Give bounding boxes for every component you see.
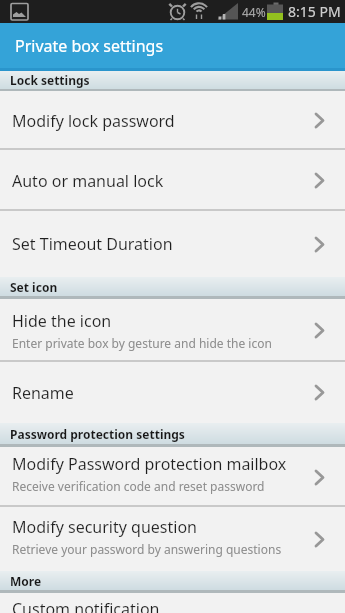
- button[interactable]: Modify Password protection mailbox: [0, 447, 345, 507]
- staticText: Modify lock password: [12, 110, 175, 132]
- staticText: Set icon: [10, 279, 58, 295]
- staticText: Password protection settings: [10, 426, 185, 442]
- button[interactable]: Modify security question: [0, 507, 345, 571]
- staticText: Receive verification code and reset pass…: [12, 478, 265, 494]
- staticText: Rename: [12, 382, 74, 404]
- staticText: Private box settings: [15, 35, 164, 57]
- staticText: Lock settings: [10, 72, 90, 88]
- button[interactable]: Auto or manual lock: [0, 150, 345, 211]
- staticText: Modify security question: [12, 516, 197, 538]
- staticText: Modify Password protection mailbox: [12, 453, 287, 475]
- staticText: Custom notification: [12, 598, 160, 613]
- button[interactable]: Custom notification: [0, 593, 345, 613]
- staticText: Enter private box by gesture and hide th…: [12, 335, 272, 351]
- staticText: Hide the icon: [12, 310, 112, 332]
- staticText: Set Timeout Duration: [12, 233, 173, 255]
- button[interactable]: Hide the icon: [0, 299, 345, 362]
- staticText: 44%: [242, 4, 266, 20]
- staticText: Retrieve your password by answering ques…: [12, 541, 282, 557]
- staticText: Auto or manual lock: [12, 170, 164, 192]
- staticText: More: [10, 573, 42, 589]
- button[interactable]: Set Timeout Duration: [0, 211, 345, 277]
- button[interactable]: Rename: [0, 362, 345, 423]
- button[interactable]: Modify lock password: [0, 91, 345, 150]
- staticText: 8:15 PM: [288, 2, 341, 21]
